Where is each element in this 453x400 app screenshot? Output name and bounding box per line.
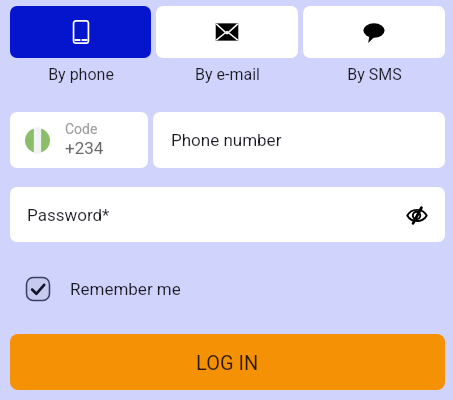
staticText: By e-mail <box>195 65 260 84</box>
staticText: By phone <box>48 65 114 84</box>
button[interactable]: Remember me <box>24 275 189 303</box>
staticText: LOG IN <box>196 351 259 374</box>
staticText: By SMS <box>347 65 402 84</box>
staticText: Remember me <box>70 279 181 299</box>
button[interactable]: Password* <box>10 187 445 242</box>
button[interactable]: By SMS <box>303 6 445 58</box>
staticText: Code <box>65 121 98 137</box>
button[interactable]: By e-mail <box>156 6 298 58</box>
button[interactable]: Phone number <box>153 112 445 168</box>
staticText: Password* <box>27 205 110 225</box>
staticText: +234 <box>65 138 104 158</box>
staticText: Phone number <box>171 130 282 150</box>
button[interactable]: Show password <box>399 197 435 233</box>
button[interactable]: LOG IN <box>10 334 445 390</box>
button[interactable]: Code <box>10 112 148 168</box>
button[interactable]: By phone <box>10 6 151 58</box>
